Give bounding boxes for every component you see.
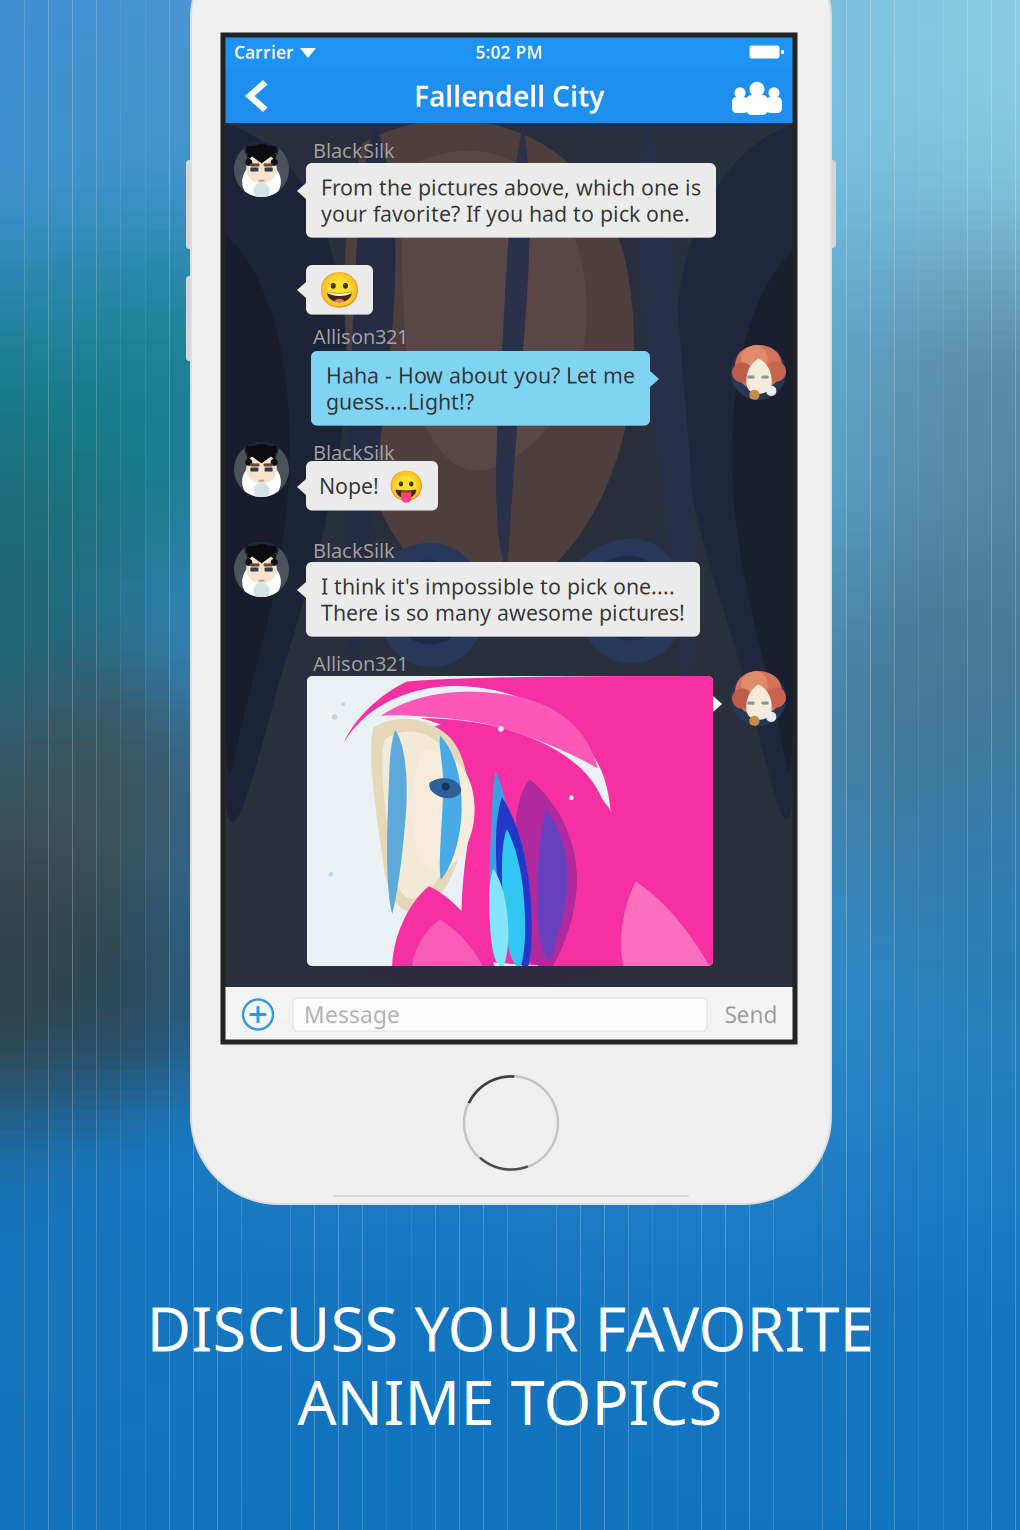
staticText: BlackSilk	[313, 439, 395, 466]
staticText: Send	[724, 999, 777, 1029]
staticText: 😛	[388, 469, 425, 502]
staticText: I think it's impossible to pick one....	[321, 572, 675, 600]
staticText: guess....Light!?	[326, 387, 474, 416]
staticText: Carrier	[234, 40, 294, 63]
staticText: Haha - How about you? Let me	[326, 361, 635, 389]
button[interactable]: Back	[223, 69, 289, 123]
staticText: ANIME TOPICS	[297, 1360, 722, 1442]
staticText: BlackSilk	[313, 137, 395, 164]
staticText: your favorite? If you had to pick one.	[321, 199, 690, 228]
staticText: Allison321	[313, 323, 408, 350]
staticText: 😀	[318, 270, 361, 310]
staticText: Fallendell City	[414, 77, 604, 115]
staticText: 5:02 PM	[475, 40, 542, 63]
staticText: Allison321	[313, 650, 408, 677]
button[interactable]: Add attachment	[234, 987, 282, 1042]
button[interactable]: Send	[715, 987, 787, 1042]
staticText: There is so many awesome pictures!	[321, 598, 685, 627]
staticText: DISCUSS YOUR FAVORITE	[146, 1287, 873, 1368]
staticText: BlackSilk	[313, 537, 395, 564]
button[interactable]: Members	[719, 69, 795, 123]
staticText: From the pictures above, which one is	[321, 173, 701, 201]
staticText: Nope!	[319, 472, 379, 500]
staticText: Message	[304, 999, 400, 1029]
